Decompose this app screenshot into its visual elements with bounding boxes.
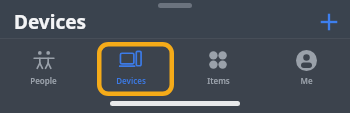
staticText: Items — [207, 75, 230, 86]
staticText: Devices — [116, 75, 146, 86]
button[interactable]: Devices — [87, 39, 174, 97]
button[interactable]: Items — [174, 39, 262, 97]
staticText: Me — [300, 75, 313, 86]
staticText: People — [30, 75, 57, 86]
button[interactable]: Me — [262, 39, 350, 97]
button[interactable]: People — [0, 39, 87, 97]
button[interactable]: Add — [316, 9, 342, 35]
staticText: Devices — [14, 9, 87, 35]
